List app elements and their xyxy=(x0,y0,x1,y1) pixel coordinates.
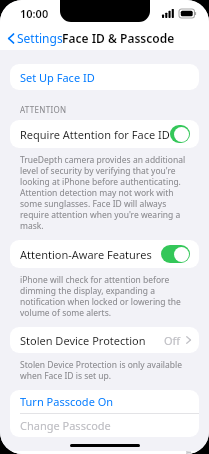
button[interactable]: Settings xyxy=(0,26,67,50)
staticText: Change Passcode xyxy=(20,418,111,433)
staticText: 10:00 xyxy=(20,6,49,21)
button[interactable]: Attention-Aware Features xyxy=(10,240,199,268)
staticText: Require Attention for Face ID xyxy=(20,127,170,142)
staticText: Stolen Device Protection xyxy=(20,333,146,348)
staticText: Turn Passcode On xyxy=(20,394,114,409)
staticText: Stolen Device Protection is only availab… xyxy=(20,359,193,381)
staticText: iPhone will check for attention before d… xyxy=(20,274,193,318)
button[interactable]: Require Passcode xyxy=(10,451,199,454)
staticText: Set Up Face ID xyxy=(20,70,95,85)
button[interactable]: Set Up Face ID xyxy=(10,64,199,90)
staticText: Face ID & Passcode xyxy=(62,30,175,46)
other: Toggle on xyxy=(170,125,190,143)
button[interactable]: Stolen Device Protection xyxy=(10,327,199,353)
button[interactable]: Turn Passcode On xyxy=(10,390,199,413)
staticText: Off xyxy=(164,333,181,348)
staticText: Attention-Aware Features xyxy=(20,247,152,262)
button[interactable]: Require Attention for Face ID xyxy=(10,120,199,148)
other: Toggle on xyxy=(161,245,190,263)
button[interactable]: Change Passcode xyxy=(10,414,199,437)
staticText: Settings xyxy=(17,30,63,46)
staticText: ATTENTION xyxy=(20,104,67,115)
staticText: TrueDepth camera provides an additional … xyxy=(20,154,193,231)
